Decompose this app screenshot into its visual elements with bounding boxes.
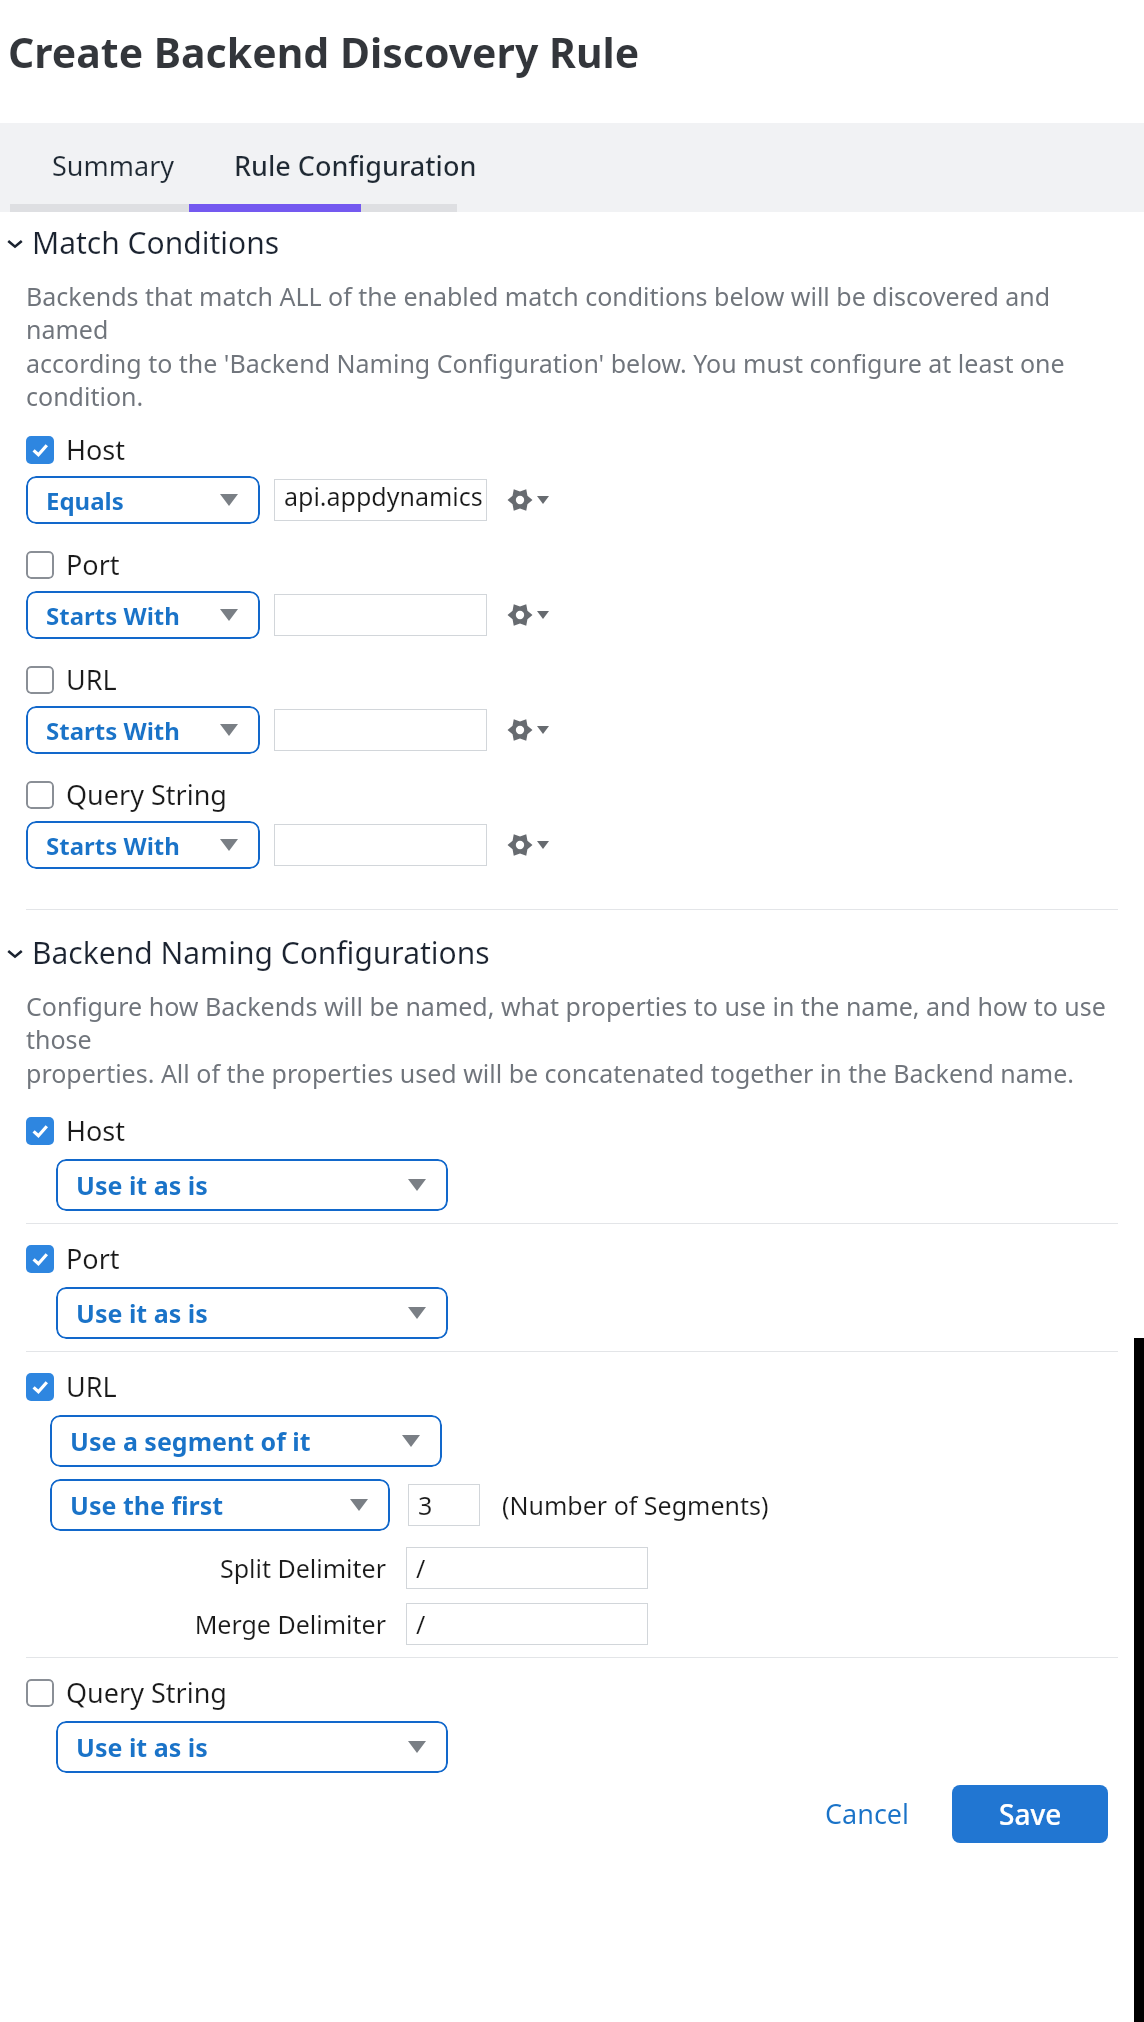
staticText: Cancel [825, 1795, 910, 1832]
button[interactable]: Host [26, 1112, 134, 1149]
button[interactable]: URL [26, 661, 125, 698]
staticText: Configure how Backends will be named, wh… [26, 989, 1118, 1056]
staticText: Create Backend Discovery Rule [8, 24, 640, 80]
staticText: Port [66, 1240, 120, 1277]
button[interactable]: Settings [503, 713, 553, 747]
button[interactable]: Starts With [26, 591, 260, 639]
staticText: Use a segment of it [70, 1424, 311, 1458]
staticText: api.appdynamics.com [284, 479, 487, 521]
button[interactable]: Use the first [50, 1479, 390, 1531]
staticText: / [416, 1607, 426, 1641]
button[interactable]: Port [26, 1240, 128, 1277]
button[interactable] [274, 824, 487, 866]
other: Collapse Match Conditions [2, 230, 28, 256]
button[interactable]: Query String [26, 776, 235, 813]
button[interactable]: Use it as is [56, 1287, 448, 1339]
button[interactable]: Equals [26, 476, 260, 524]
staticText: Backends that match ALL of the enabled m… [26, 279, 1118, 346]
staticText: Host [66, 431, 126, 468]
staticText: URL [66, 1368, 117, 1405]
button[interactable]: Query String [26, 1674, 235, 1711]
other: Collapse Backend Naming Configurations [2, 940, 28, 966]
button[interactable]: Cancel [809, 1783, 926, 1844]
staticText: Split Delimiter [219, 1551, 386, 1585]
button[interactable]: Host [26, 431, 134, 468]
button[interactable]: / [406, 1603, 648, 1645]
staticText: according to the 'Backend Naming Configu… [26, 346, 1118, 413]
staticText: 3 [418, 1488, 433, 1522]
staticText: Use it as is [76, 1730, 208, 1764]
staticText: Use it as is [76, 1168, 208, 1202]
button[interactable]: Port [26, 546, 128, 583]
button[interactable]: URL [26, 1368, 125, 1405]
staticText: Query String [66, 1674, 227, 1711]
button[interactable]: Use a segment of it [50, 1415, 442, 1467]
staticText: Starts With [46, 599, 180, 632]
button[interactable] [274, 709, 487, 751]
staticText: Backend Naming Configurations [32, 932, 490, 973]
button[interactable]: Use it as is [56, 1159, 448, 1211]
staticText: Starts With [46, 714, 180, 747]
staticText: properties. All of the properties used w… [26, 1056, 1075, 1090]
button[interactable]: Settings [503, 828, 553, 862]
staticText: Equals [46, 484, 124, 517]
staticText: Use it as is [76, 1296, 208, 1330]
staticText: Match Conditions [32, 222, 280, 263]
button[interactable]: Settings [503, 598, 553, 632]
button[interactable]: Starts With [26, 821, 260, 869]
staticText: Port [66, 546, 120, 583]
button[interactable]: / [406, 1547, 648, 1589]
button[interactable]: Summary [50, 147, 177, 184]
staticText: (Number of Segments) [502, 1488, 769, 1522]
button[interactable]: Collapse Match Conditions [0, 222, 288, 263]
staticText: URL [66, 661, 117, 698]
button[interactable]: Settings [503, 483, 553, 517]
button[interactable] [274, 594, 487, 636]
staticText: Use the first [70, 1488, 224, 1522]
button[interactable]: 3 [408, 1484, 480, 1526]
button[interactable]: api.appdynamics.com [274, 479, 487, 521]
button[interactable]: Rule Configuration [232, 147, 479, 184]
button[interactable]: Collapse Backend Naming Configurations [0, 932, 498, 973]
button[interactable]: Save [952, 1785, 1108, 1843]
button[interactable]: Use it as is [56, 1721, 448, 1773]
staticText: Save [999, 1795, 1062, 1833]
staticText: Host [66, 1112, 126, 1149]
staticText: / [416, 1551, 426, 1585]
staticText: Merge Delimiter [194, 1607, 386, 1641]
staticText: Query String [66, 776, 227, 813]
staticText: Starts With [46, 829, 180, 862]
button[interactable]: Starts With [26, 706, 260, 754]
